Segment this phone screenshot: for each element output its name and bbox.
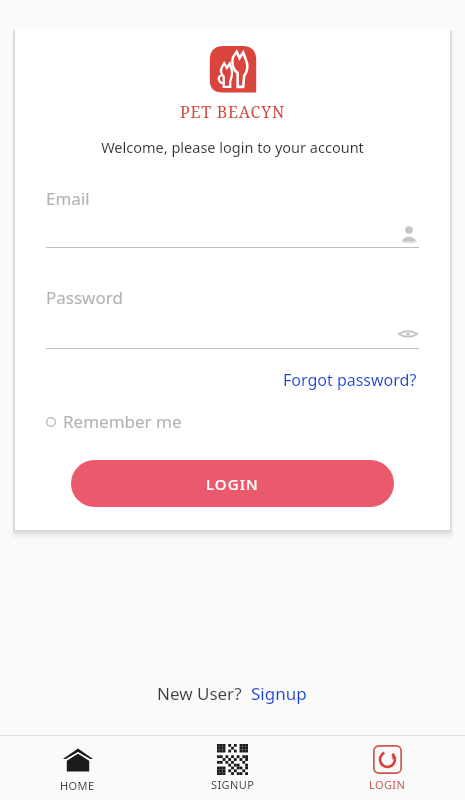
- staticText: Signup: [251, 682, 307, 705]
- button[interactable]: Home: [0, 740, 155, 797]
- other: Home: [62, 744, 94, 776]
- other: Login: [372, 744, 403, 775]
- staticText: Forgot password?: [283, 369, 417, 391]
- staticText: SIGNUP: [211, 777, 255, 792]
- staticText: New User?: [157, 682, 242, 705]
- button[interactable]: LOGIN: [71, 460, 394, 507]
- button[interactable]: Login: [310, 740, 465, 796]
- staticText: Password: [46, 286, 123, 309]
- staticText: PET BEACYN: [180, 101, 286, 123]
- button[interactable]: Signup: [155, 740, 310, 796]
- button[interactable]: Forgot password?: [281, 367, 419, 393]
- other: Account: [399, 224, 419, 244]
- button[interactable]: Password: [46, 286, 419, 349]
- other: Show password: [397, 323, 419, 345]
- other: Signup: [217, 744, 248, 775]
- button[interactable]: Remember me: [44, 407, 184, 436]
- button[interactable]: Email: [46, 187, 419, 248]
- button[interactable]: Signup: [249, 680, 309, 707]
- staticText: Welcome, please login to your account: [15, 137, 450, 157]
- staticText: HOME: [60, 778, 95, 793]
- staticText: Remember me: [63, 410, 182, 433]
- staticText: LOGIN: [206, 474, 259, 494]
- staticText: Email: [46, 187, 90, 210]
- staticText: LOGIN: [369, 777, 406, 792]
